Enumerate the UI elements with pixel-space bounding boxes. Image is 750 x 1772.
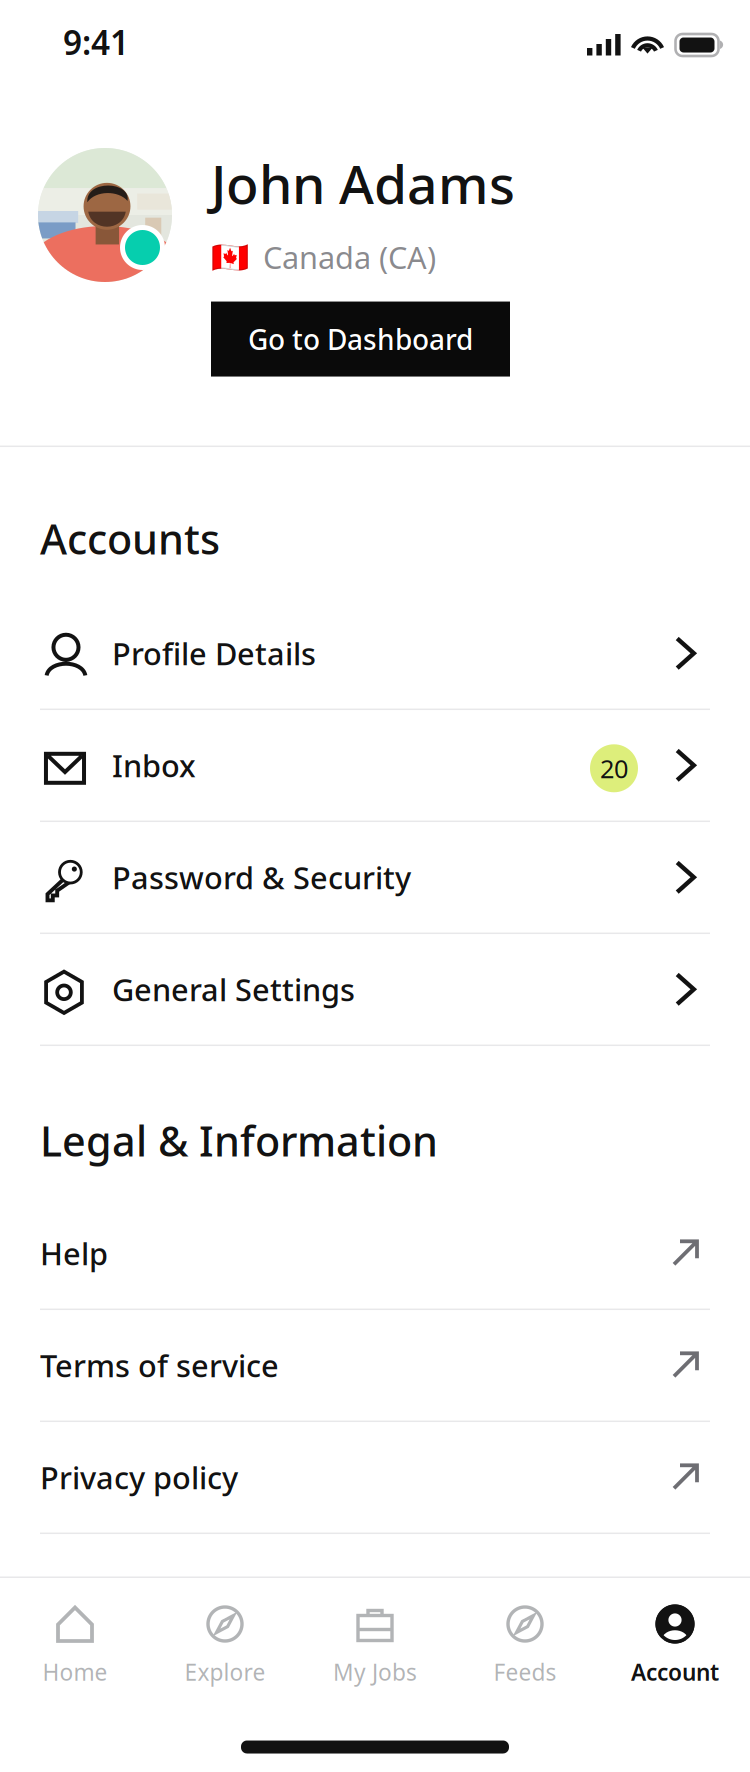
staticText: Feeds (493, 1657, 556, 1687)
button[interactable]: Account (600, 1578, 750, 1702)
staticText: Privacy policy (40, 1457, 238, 1498)
staticText: Go to Dashboard (248, 320, 473, 358)
staticText: 20 (600, 751, 628, 785)
button[interactable]: Inbox (0, 710, 750, 822)
button[interactable]: Privacy policy (0, 1422, 750, 1534)
button[interactable]: Profile Details (0, 598, 750, 710)
staticText: 9:41 (63, 20, 129, 64)
button[interactable]: Help (0, 1198, 750, 1310)
button[interactable]: Terms of service (0, 1310, 750, 1422)
button[interactable]: Explore (150, 1578, 300, 1702)
staticText: Canada (CA) (263, 237, 436, 277)
staticText: Accounts (40, 511, 220, 566)
staticText: Profile Details (112, 633, 316, 674)
staticText: John Adams (211, 148, 515, 219)
staticText: Help (40, 1233, 108, 1274)
staticText: Legal & Information (40, 1113, 438, 1168)
button[interactable]: Home (0, 1578, 150, 1702)
staticText: Inbox (112, 745, 196, 786)
staticText: 🇨🇦 (211, 240, 249, 275)
button[interactable]: Feeds (450, 1578, 600, 1702)
staticText: Password & Security (112, 857, 411, 898)
button[interactable]: My Jobs (300, 1578, 450, 1702)
staticText: Explore (184, 1657, 265, 1687)
staticText: Terms of service (40, 1345, 279, 1386)
button[interactable]: General Settings (0, 934, 750, 1046)
button[interactable]: Password & Security (0, 822, 750, 934)
staticText: Home (42, 1657, 107, 1687)
button[interactable]: Go to Dashboard (211, 301, 510, 376)
staticText: Account (631, 1657, 719, 1687)
staticText: General Settings (112, 969, 355, 1010)
staticText: My Jobs (333, 1657, 417, 1687)
